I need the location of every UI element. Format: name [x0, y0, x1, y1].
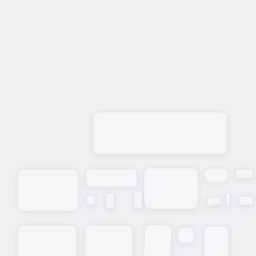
button[interactable]: Item [203, 167, 230, 183]
button[interactable]: Item [85, 168, 138, 188]
button[interactable]: Item [203, 225, 230, 256]
button[interactable]: Item [105, 192, 115, 209]
button[interactable]: Item [84, 224, 134, 256]
button[interactable]: Item [133, 191, 143, 209]
button[interactable]: Item [143, 224, 172, 256]
button[interactable]: Item [17, 168, 79, 212]
button[interactable]: Item [177, 226, 195, 244]
button[interactable]: Item [143, 167, 199, 210]
button[interactable]: Item [17, 224, 78, 256]
button[interactable]: Item [92, 111, 228, 155]
button[interactable]: Item [235, 168, 254, 179]
button[interactable]: Item [206, 196, 222, 206]
button[interactable]: Item [85, 194, 97, 206]
button[interactable]: Item [238, 195, 254, 206]
button[interactable]: Item [225, 192, 231, 207]
